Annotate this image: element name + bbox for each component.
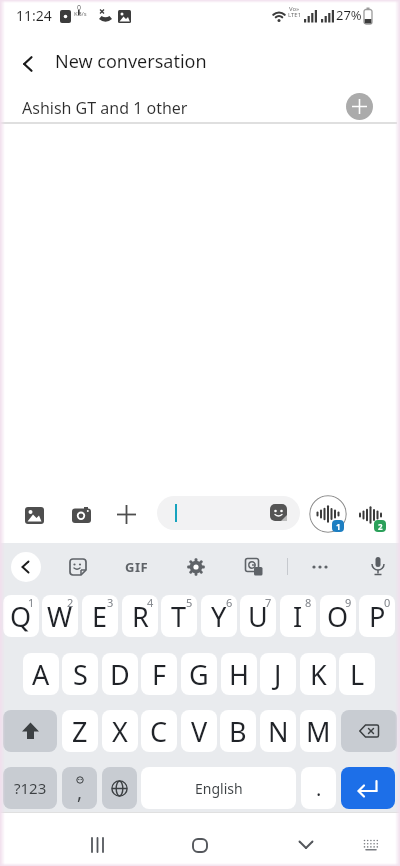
staticText: ?123	[14, 778, 47, 798]
staticText: 0	[77, 3, 82, 13]
button[interactable]: W	[42, 595, 78, 637]
button[interactable]: English	[141, 767, 296, 809]
button[interactable]: P	[359, 595, 395, 637]
button[interactable]: GIF	[120, 553, 153, 580]
staticText: M	[306, 713, 331, 750]
button[interactable]: M	[300, 710, 336, 752]
staticText: .	[316, 775, 322, 802]
staticText: K	[310, 656, 327, 693]
staticText: O	[327, 598, 349, 635]
staticText: E	[92, 598, 108, 635]
button[interactable]: T	[161, 595, 197, 637]
staticText: J	[274, 656, 282, 693]
button[interactable]	[12, 48, 44, 80]
button[interactable]	[65, 500, 97, 530]
button[interactable]: D	[102, 653, 138, 695]
staticText: Ashish GT and 1 other	[22, 97, 188, 119]
staticText: B	[229, 713, 247, 750]
staticText: 0	[384, 595, 391, 610]
staticText: V	[191, 713, 208, 750]
staticText: I	[293, 598, 303, 635]
button[interactable]	[102, 767, 137, 809]
button[interactable]	[182, 553, 210, 580]
button[interactable]: .	[301, 767, 336, 809]
staticText: F	[152, 656, 167, 693]
staticText: R	[132, 598, 149, 635]
staticText: Z	[72, 713, 88, 750]
staticText: L	[350, 656, 365, 693]
staticText: KB/s	[74, 10, 87, 18]
button[interactable]	[157, 496, 300, 530]
staticText: U	[248, 598, 268, 635]
button[interactable]	[306, 553, 334, 580]
button[interactable]: F	[141, 653, 177, 695]
button[interactable]: C	[141, 710, 177, 752]
staticText: 5	[186, 595, 193, 610]
staticText: 11:24	[16, 6, 52, 25]
button[interactable]: Q	[3, 595, 39, 637]
button[interactable]	[11, 552, 41, 582]
staticText: New conversation	[55, 49, 207, 74]
staticText: S	[73, 656, 88, 693]
button[interactable]	[346, 93, 373, 120]
staticText: 3	[107, 595, 114, 610]
button[interactable]: V	[181, 710, 217, 752]
staticText: N	[268, 713, 289, 750]
button[interactable]	[111, 499, 142, 530]
button[interactable]: ?123	[3, 767, 57, 809]
staticText: GIF	[125, 558, 149, 576]
staticText: Y	[211, 598, 227, 635]
button[interactable]: K	[300, 653, 336, 695]
staticText: A	[32, 656, 50, 693]
button[interactable]: H	[221, 653, 257, 695]
staticText: G	[189, 656, 209, 693]
staticText: 27%	[336, 6, 362, 24]
button[interactable]: A	[23, 653, 59, 695]
button[interactable]: G	[181, 653, 217, 695]
button[interactable]	[78, 826, 116, 864]
staticText: Vo»	[289, 5, 300, 13]
button[interactable]: U	[240, 595, 276, 637]
staticText: English	[195, 779, 243, 798]
staticText: 4	[147, 595, 154, 610]
button[interactable]	[352, 495, 389, 533]
button[interactable]: L	[339, 653, 375, 695]
button[interactable]	[309, 495, 347, 533]
button[interactable]: I	[280, 595, 316, 637]
staticText: 7	[265, 595, 272, 610]
staticText: H	[229, 656, 250, 693]
button[interactable]	[64, 553, 91, 580]
button[interactable]: E	[82, 595, 118, 637]
button[interactable]	[240, 553, 268, 580]
button[interactable]: Y	[201, 595, 237, 637]
staticText: C	[150, 713, 168, 750]
staticText: T	[171, 598, 187, 635]
button[interactable]: Z	[62, 710, 98, 752]
staticText: 6	[226, 595, 233, 610]
button[interactable]	[18, 500, 50, 530]
button[interactable]	[364, 553, 392, 580]
button[interactable]	[3, 710, 57, 752]
staticText: P	[369, 598, 386, 635]
button[interactable]	[341, 710, 397, 752]
staticText: X	[112, 713, 128, 750]
staticText: 2	[378, 521, 383, 532]
button[interactable]: X	[102, 710, 138, 752]
button[interactable]: S	[62, 653, 98, 695]
button[interactable]: J	[260, 653, 296, 695]
staticText: 9	[345, 595, 352, 610]
button[interactable]: ,	[62, 767, 97, 809]
staticText: 2	[67, 595, 74, 610]
button[interactable]	[287, 826, 325, 864]
button[interactable]: B	[220, 710, 256, 752]
button[interactable]: O	[320, 595, 356, 637]
button[interactable]	[358, 833, 384, 857]
button[interactable]: R	[122, 595, 158, 637]
staticText: W	[47, 598, 73, 635]
button[interactable]: N	[260, 710, 296, 752]
button[interactable]	[341, 767, 395, 809]
staticText: ,	[77, 779, 83, 805]
staticText: LTE1	[288, 11, 302, 19]
staticText: 8	[305, 595, 312, 610]
button[interactable]	[181, 826, 219, 864]
